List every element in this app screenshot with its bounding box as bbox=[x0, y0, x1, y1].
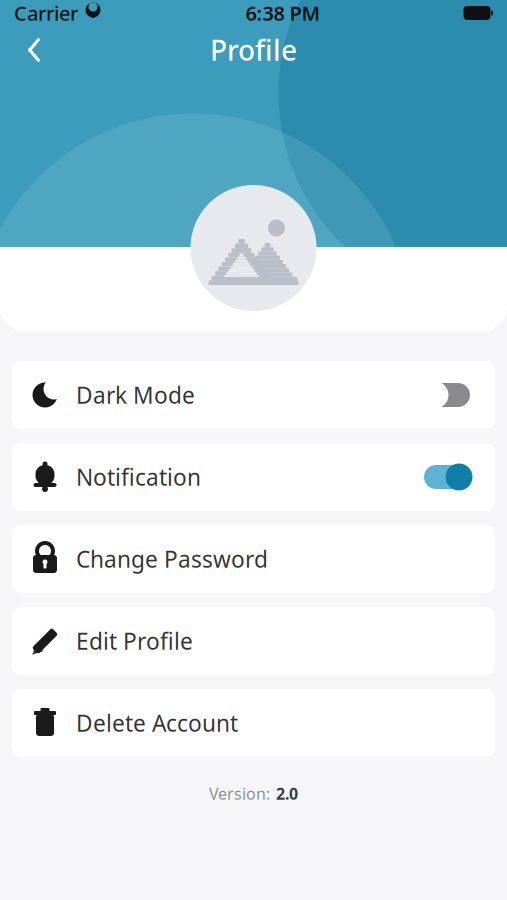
staticText: Profile bbox=[210, 31, 297, 69]
staticText: 2.0 bbox=[276, 783, 298, 804]
button[interactable]: Delete Account bbox=[12, 689, 495, 757]
staticText: Notification bbox=[76, 462, 201, 492]
staticText: 6:38 PM bbox=[245, 0, 320, 26]
button[interactable]: Back bbox=[12, 28, 56, 72]
button[interactable]: Edit Profile bbox=[12, 607, 495, 675]
staticText: Change Password bbox=[76, 544, 268, 574]
staticText: Delete Account bbox=[76, 708, 238, 738]
staticText: Edit Profile bbox=[76, 626, 193, 656]
staticText: Version: bbox=[209, 783, 270, 804]
button[interactable]: Dark Mode bbox=[12, 361, 495, 429]
button[interactable]: Notification bbox=[12, 443, 495, 511]
button[interactable]: Change Password bbox=[12, 525, 495, 593]
staticText: Carrier bbox=[14, 0, 78, 26]
staticText: Dark Mode bbox=[76, 380, 195, 410]
